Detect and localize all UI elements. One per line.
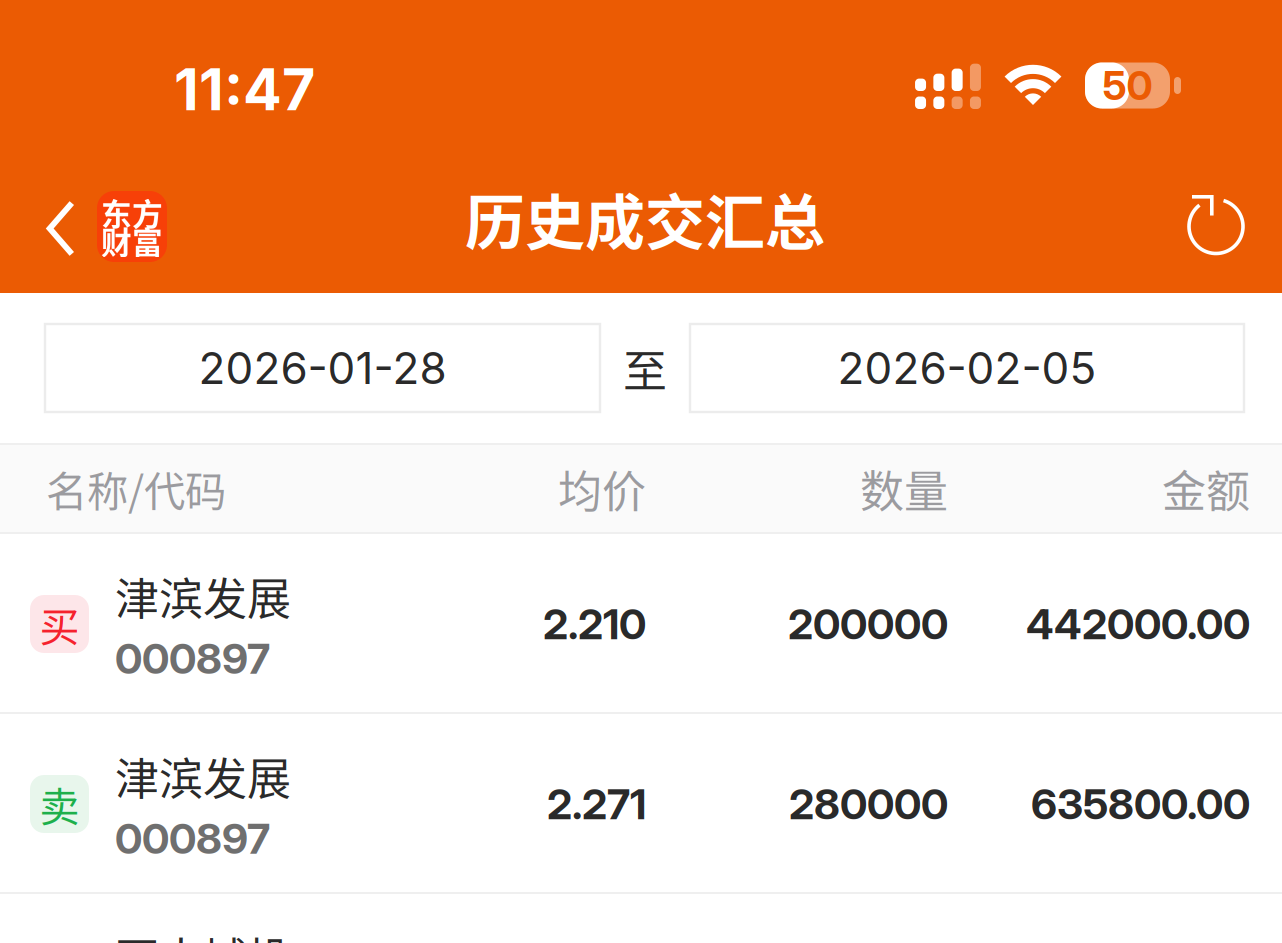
- staticText: 金额: [1162, 457, 1250, 520]
- staticText: 津滨发展: [115, 744, 291, 808]
- staticText: 均价: [558, 457, 646, 520]
- staticText: 2.271: [547, 779, 646, 829]
- staticText: 亚太城投: [115, 924, 291, 943]
- button[interactable]: 卖: [0, 714, 1282, 894]
- button[interactable]: 2026-02-05: [690, 324, 1244, 412]
- staticText: 000897: [115, 633, 270, 684]
- staticText: 至: [623, 336, 667, 400]
- staticText: 历史成交汇总: [465, 175, 825, 262]
- staticText: 000897: [115, 813, 270, 864]
- staticText: 50: [1102, 61, 1152, 110]
- staticText: 2026-01-28: [198, 341, 446, 395]
- button[interactable]: 买: [0, 534, 1282, 714]
- staticText: 买: [39, 595, 79, 653]
- staticText: 东方: [101, 190, 163, 235]
- staticText: 11:47: [174, 55, 315, 124]
- staticText: 津滨发展: [115, 564, 291, 628]
- button[interactable]: 返回: [0, 152, 187, 272]
- staticText: 卖: [39, 775, 79, 833]
- staticText: 数量: [860, 457, 948, 520]
- staticText: 2.210: [543, 599, 646, 649]
- staticText: 200000: [788, 599, 948, 649]
- staticText: 280000: [789, 779, 948, 829]
- button[interactable]: 刷新: [1157, 152, 1282, 272]
- staticText: 442000.00: [1026, 599, 1250, 649]
- button[interactable]: 买: [0, 894, 1282, 943]
- staticText: 635800.00: [1031, 779, 1250, 829]
- staticText: 2026-02-05: [837, 341, 1096, 395]
- button[interactable]: 2026-01-28: [45, 324, 600, 412]
- staticText: 名称/代码: [46, 459, 226, 518]
- staticText: 财富: [101, 218, 163, 263]
